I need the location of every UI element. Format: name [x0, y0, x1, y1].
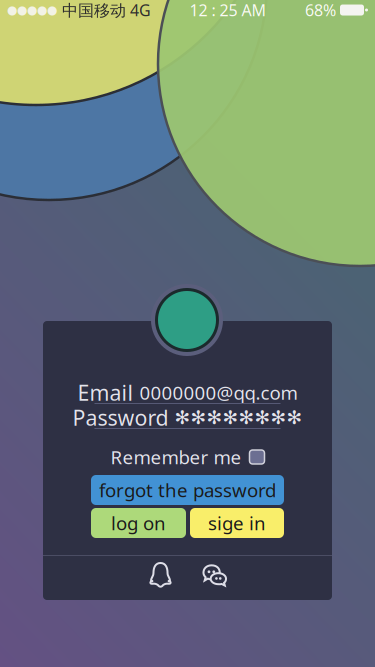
button[interactable]: log on: [91, 508, 186, 538]
staticText: Password: [72, 403, 168, 432]
staticText: forgot the password: [99, 478, 276, 502]
staticText: ●●●●●: [7, 3, 57, 17]
staticText: sige in: [208, 511, 266, 535]
button[interactable]: forgot the password: [91, 475, 284, 505]
button[interactable]: Remember me: [249, 450, 264, 464]
button[interactable]: Sign in with WeChat: [201, 561, 227, 588]
staticText: 12 : 25 AM: [189, 0, 266, 21]
button[interactable]: sige in: [190, 508, 284, 538]
staticText: 68%: [305, 0, 336, 21]
button[interactable]: Sign in with QQ: [147, 561, 173, 588]
staticText: 0000000@qq.com: [139, 380, 297, 405]
staticText: log on: [111, 511, 166, 535]
staticText: 中国移动 4G: [57, 0, 151, 21]
staticText: Remember me: [110, 445, 241, 469]
staticText: Email: [77, 378, 133, 407]
staticText: ✻✻✻✻✻✻✻✻: [174, 407, 302, 428]
